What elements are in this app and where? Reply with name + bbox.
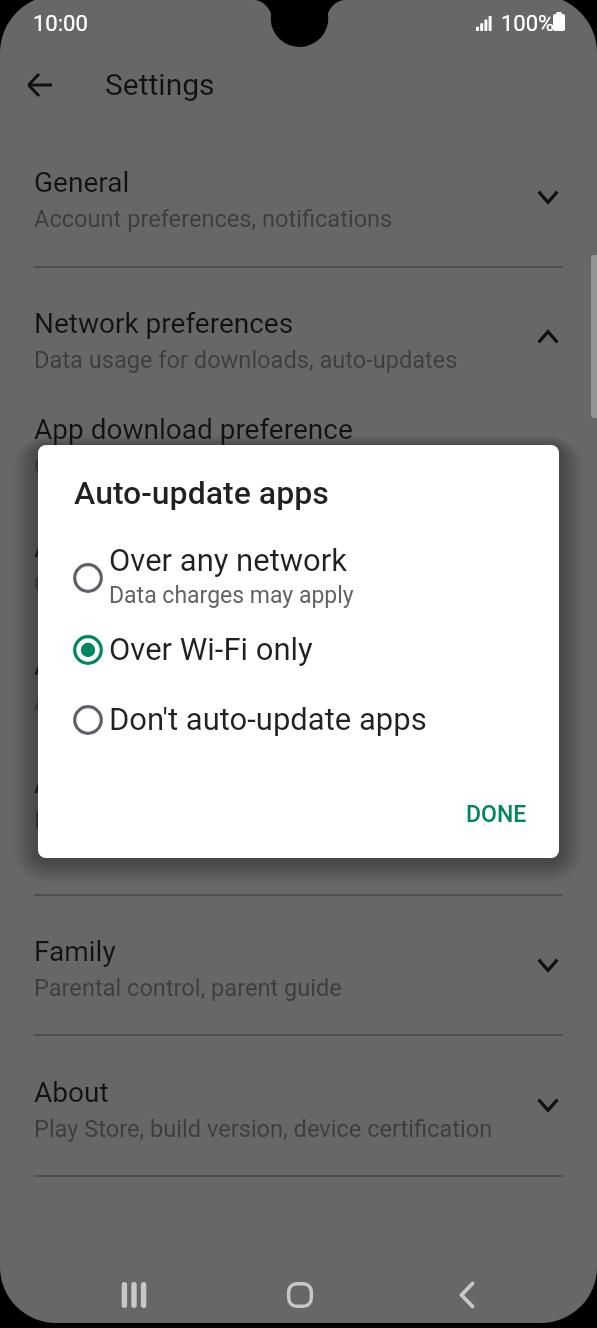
staticText: Data charges may apply <box>109 582 354 609</box>
staticText: Ask about apps <box>34 767 228 800</box>
staticText: Family <box>34 935 116 968</box>
staticText: Settings <box>105 67 215 102</box>
button[interactable]: Recent apps <box>108 1269 160 1321</box>
staticText: Parental control, parent guide <box>34 974 342 1002</box>
staticText: Over any network <box>34 452 216 480</box>
button[interactable]: Back <box>441 1269 493 1321</box>
staticText: Data usage for downloads, auto-updates <box>34 346 458 374</box>
staticText: Auto-update apps <box>34 531 255 564</box>
button[interactable]: Navigate up <box>16 61 64 109</box>
button[interactable]: DONE <box>450 790 543 839</box>
button[interactable]: Expand <box>524 173 572 221</box>
staticText: 10:00 <box>33 11 88 37</box>
staticText: Over Wi-Fi only <box>109 631 313 667</box>
staticText: Network preferences <box>34 307 294 340</box>
button[interactable] <box>0 126 597 266</box>
staticText: Over any network <box>109 542 348 578</box>
staticText: Play Store, build version, device certif… <box>34 1115 493 1143</box>
button[interactable] <box>0 267 597 407</box>
button[interactable]: Home <box>274 1269 326 1321</box>
staticText: Over Wi-Fi only <box>34 570 190 598</box>
staticText: Let me choose <box>34 806 189 834</box>
staticText: Auto-update apps <box>74 474 329 512</box>
staticText: About <box>34 1076 109 1109</box>
button[interactable]: Expand <box>524 941 572 989</box>
button[interactable] <box>0 1035 597 1175</box>
staticText: Don't auto-update apps <box>109 701 427 737</box>
button[interactable]: Collapse <box>524 313 572 361</box>
button[interactable] <box>38 625 559 685</box>
button[interactable] <box>0 895 597 1035</box>
staticText: Account preferences, notifications <box>34 205 393 233</box>
staticText: App download preference <box>34 413 353 446</box>
staticText: 100% <box>501 11 555 37</box>
button[interactable] <box>0 644 597 762</box>
staticText: DONE <box>466 801 527 828</box>
button[interactable] <box>0 762 597 880</box>
button[interactable]: Expand <box>524 1081 572 1129</box>
button[interactable] <box>38 547 559 621</box>
button[interactable] <box>0 526 597 644</box>
staticText: Always <box>34 688 109 716</box>
staticText: General <box>34 166 130 199</box>
button[interactable] <box>0 408 597 526</box>
button[interactable] <box>38 695 559 755</box>
staticText: Auto-play videos <box>34 649 240 682</box>
